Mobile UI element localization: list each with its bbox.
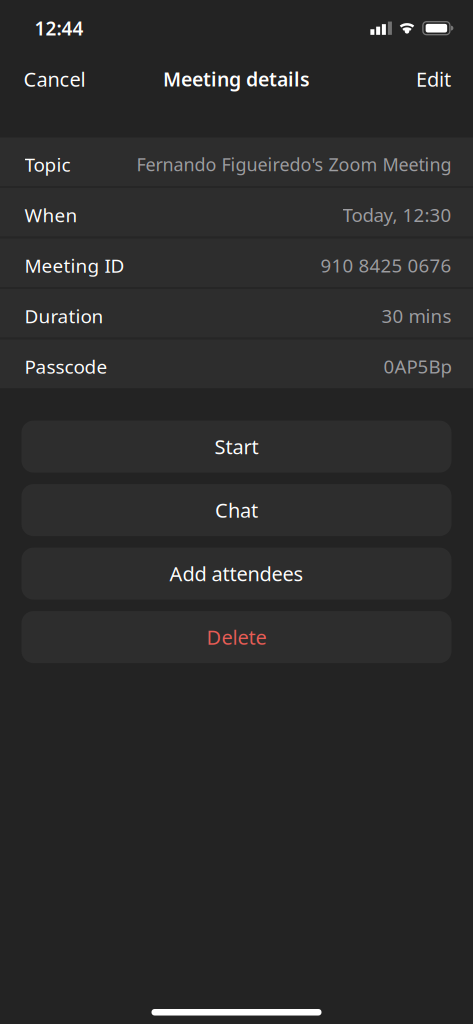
button[interactable]: Edit (400, 54, 473, 104)
staticText: Meeting ID (24, 253, 124, 278)
staticText: Delete (206, 624, 266, 650)
staticText: Cancel (23, 66, 85, 92)
staticText: Add attendees (169, 560, 303, 587)
staticText: Chat (215, 497, 258, 523)
staticText: 30 mins (381, 303, 451, 328)
staticText: 12:44 (34, 16, 83, 41)
staticText: Fernando Figueiredo's Zoom Meeting (136, 152, 451, 176)
staticText: Meeting details (163, 66, 310, 92)
button[interactable]: Cancel (0, 54, 101, 104)
staticText: Edit (416, 66, 451, 92)
button[interactable]: Chat (21, 484, 451, 536)
staticText: Passcode (24, 354, 107, 379)
button[interactable]: Delete (21, 611, 451, 663)
staticText: When (24, 202, 77, 227)
staticText: Duration (24, 303, 103, 328)
staticText: Start (214, 433, 258, 460)
staticText: Topic (24, 152, 70, 177)
staticText: 0AP5Bp (383, 354, 451, 379)
staticText: Today, 12:30 (342, 202, 451, 227)
button[interactable]: Start (21, 421, 451, 473)
button[interactable]: Add attendees (21, 548, 451, 600)
staticText: 910 8425 0676 (320, 253, 451, 278)
